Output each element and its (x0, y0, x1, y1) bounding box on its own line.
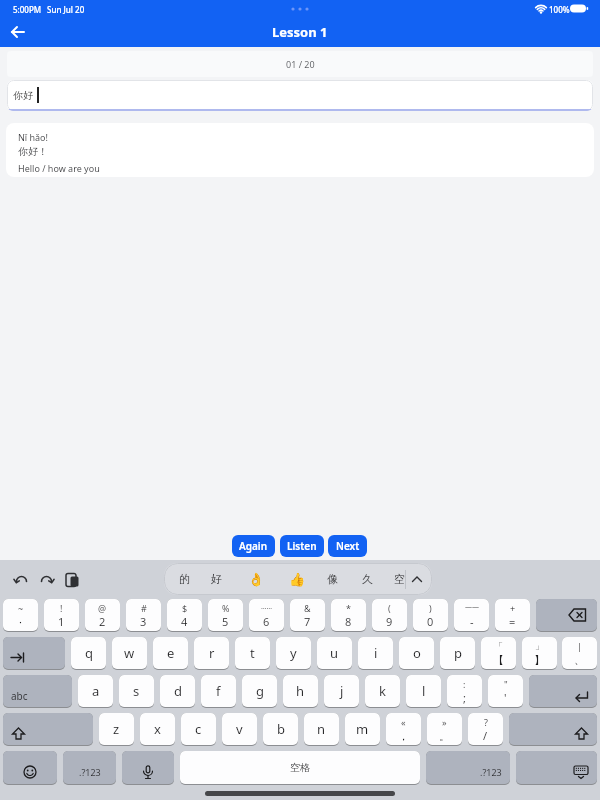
staticText: .?123 (79, 766, 101, 778)
staticText: 8 (345, 614, 352, 629)
button[interactable]: ! (44, 599, 79, 631)
staticText: n (317, 720, 326, 738)
button[interactable]: .?123 (426, 751, 510, 784)
button[interactable]: c (181, 713, 216, 745)
staticText: ( (388, 602, 391, 614)
staticText: 2 (99, 614, 106, 629)
staticText: / (483, 728, 488, 743)
button[interactable]: n (304, 713, 339, 745)
staticText: j (340, 682, 344, 700)
button[interactable]: 好 (204, 563, 228, 595)
button[interactable]: h (283, 675, 318, 707)
staticText: —— (465, 602, 479, 612)
staticText: 】 (534, 653, 545, 667)
button[interactable] (39, 573, 54, 587)
button[interactable]: t (235, 637, 270, 669)
button[interactable] (516, 751, 597, 784)
button[interactable]: | (562, 637, 597, 669)
button[interactable]: ) (413, 599, 448, 631)
button[interactable] (3, 637, 65, 669)
button[interactable]: v (222, 713, 257, 745)
staticText: u (330, 644, 339, 662)
button[interactable]: Again (232, 535, 275, 557)
button[interactable]: abc (3, 675, 72, 707)
button[interactable]: e (153, 637, 188, 669)
button[interactable]: & (290, 599, 325, 631)
staticText: 6 (263, 614, 270, 629)
button[interactable]: .?123 (63, 751, 116, 784)
button[interactable]: —— (454, 599, 489, 631)
button[interactable]: Listen (280, 535, 324, 557)
button[interactable]: * (331, 599, 366, 631)
button[interactable]: ? (468, 713, 503, 745)
button[interactable] (6, 21, 32, 43)
button[interactable]: r (194, 637, 229, 669)
button[interactable]: j (324, 675, 359, 707)
button[interactable]: ( (372, 599, 407, 631)
button[interactable]: 的 (172, 563, 196, 595)
button[interactable]: 空格 (180, 751, 420, 784)
button[interactable] (122, 751, 174, 784)
staticText: 01 / 20 (286, 58, 315, 70)
staticText: k (379, 682, 386, 700)
button[interactable]: 你好 (7, 80, 593, 111)
staticText: abc (11, 689, 28, 703)
button[interactable]: d (160, 675, 195, 707)
staticText: a (92, 682, 100, 700)
button[interactable]: k (365, 675, 400, 707)
staticText: Next (336, 539, 360, 553)
button[interactable] (536, 599, 597, 631)
staticText: % (222, 602, 230, 614)
button[interactable]: @ (85, 599, 120, 631)
button[interactable]: $ (167, 599, 202, 631)
staticText: .?123 (480, 766, 502, 778)
button[interactable]: » (427, 713, 462, 745)
button[interactable]: « (386, 713, 421, 745)
staticText: 「 (494, 640, 503, 651)
button[interactable]: p (440, 637, 475, 669)
button[interactable]: + (495, 599, 530, 631)
staticText: q (85, 644, 93, 662)
staticText: | (577, 640, 582, 652)
button[interactable]: Next (328, 535, 367, 557)
button[interactable]: y (276, 637, 311, 669)
button[interactable] (14, 573, 29, 587)
button[interactable]: l (406, 675, 441, 707)
button[interactable] (3, 751, 57, 784)
button[interactable]: q (71, 637, 106, 669)
button[interactable] (529, 675, 597, 707)
button[interactable] (509, 713, 597, 745)
button[interactable]: b (263, 713, 298, 745)
button[interactable]: g (242, 675, 277, 707)
staticText: * (346, 602, 351, 614)
button[interactable]: z (99, 713, 134, 745)
button[interactable]: s (119, 675, 154, 707)
button[interactable]: 久 (355, 563, 379, 595)
button[interactable]: 像 (320, 563, 344, 595)
button[interactable]: f (201, 675, 236, 707)
button[interactable]: w (112, 637, 147, 669)
button[interactable]: 👌 (244, 563, 268, 595)
button[interactable]: 「 (481, 637, 516, 669)
button[interactable]: ~ (3, 599, 38, 631)
staticText: f (216, 682, 221, 700)
button[interactable]: # (126, 599, 161, 631)
button[interactable]: 👍 (285, 563, 309, 595)
button[interactable]: a (78, 675, 113, 707)
button[interactable]: u (317, 637, 352, 669)
staticText: + (510, 602, 516, 614)
button[interactable]: " (488, 675, 523, 707)
button[interactable]: : (447, 675, 482, 707)
button[interactable]: …… (249, 599, 284, 631)
button[interactable]: x (140, 713, 175, 745)
button[interactable]: i (358, 637, 393, 669)
staticText: h (296, 682, 305, 700)
button[interactable]: o (399, 637, 434, 669)
button[interactable]: 」 (522, 637, 557, 669)
staticText: Sun Jul 20 (47, 4, 85, 15)
button[interactable]: m (345, 713, 380, 745)
button[interactable] (3, 713, 93, 745)
staticText: 7 (304, 614, 311, 629)
button[interactable]: % (208, 599, 243, 631)
staticText: 3 (140, 614, 147, 629)
